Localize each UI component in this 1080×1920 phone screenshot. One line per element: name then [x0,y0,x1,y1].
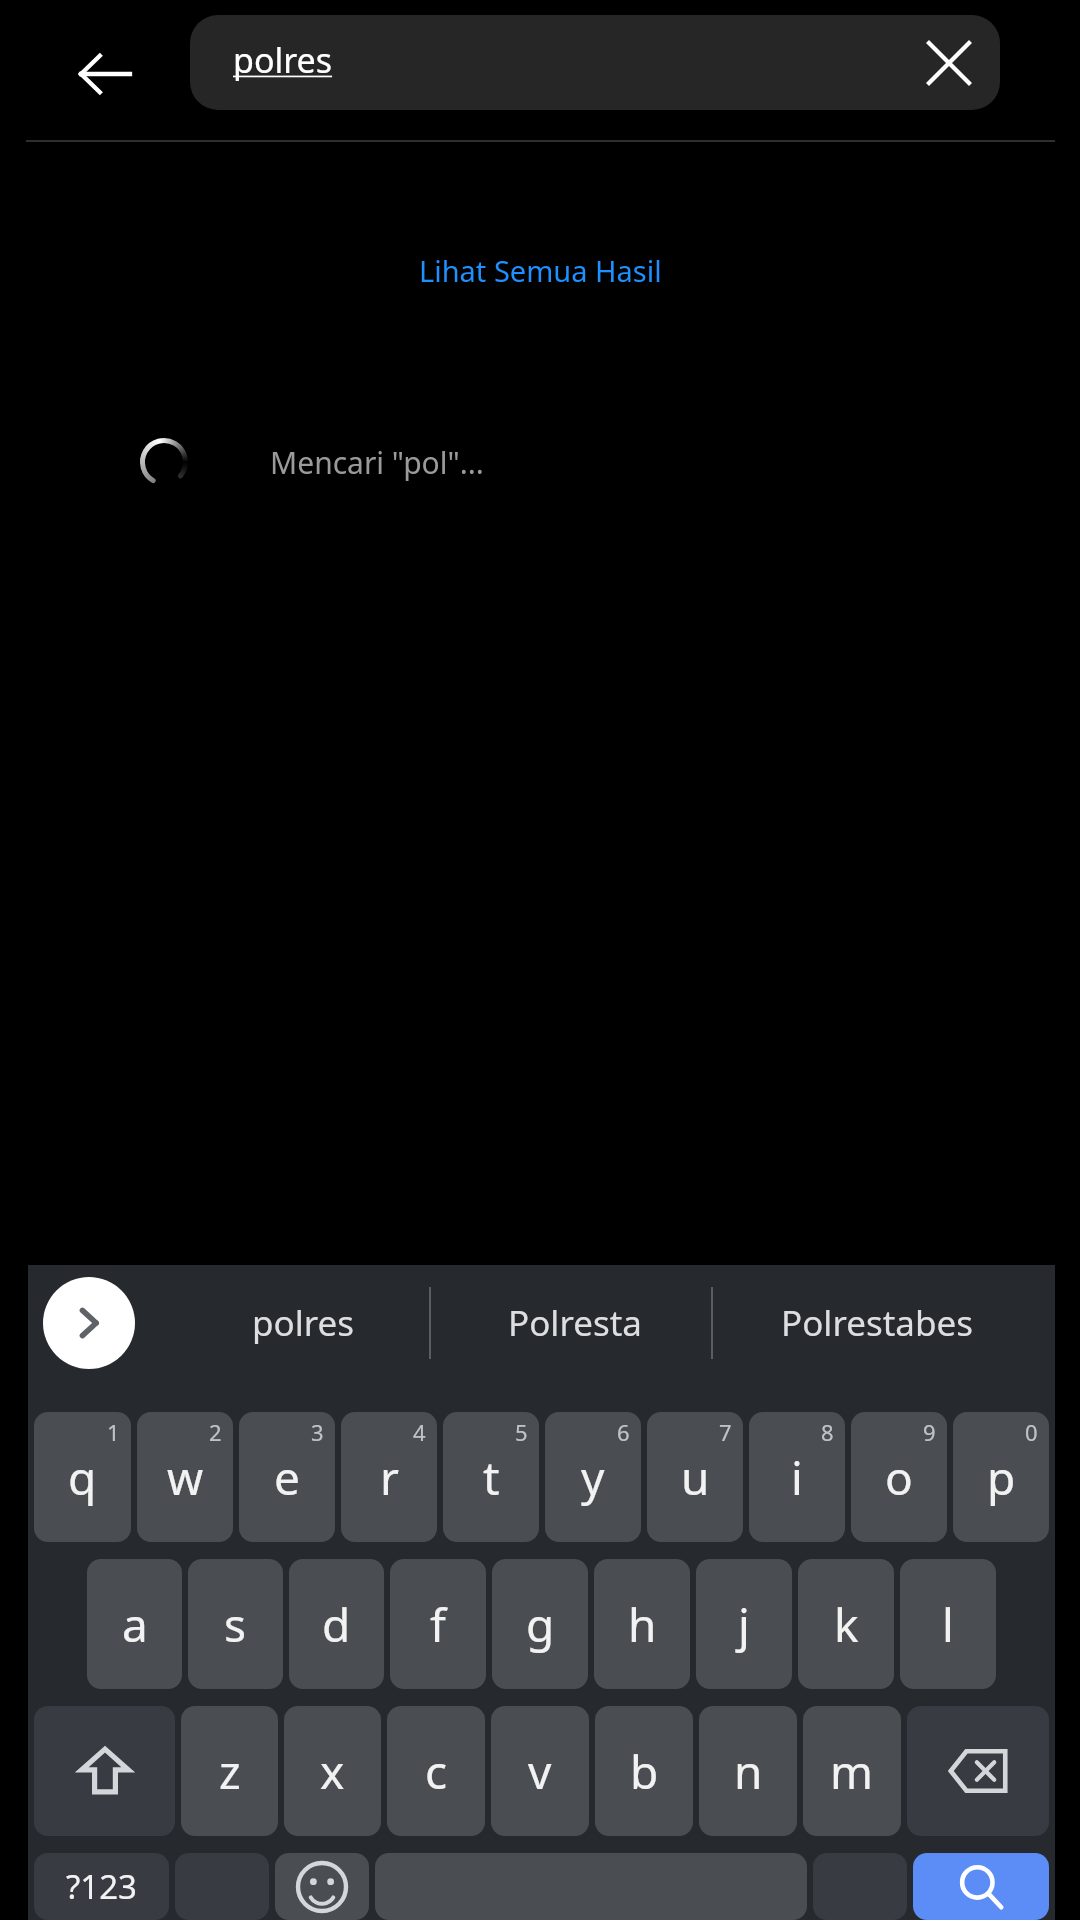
staticText: g [526,1593,555,1656]
button[interactable]: Search [913,1853,1049,1920]
button[interactable]: x [284,1706,381,1836]
button[interactable]: u [647,1412,743,1542]
button[interactable]: Lihat Semua Hasil [0,238,1080,302]
staticText: v [528,1740,552,1803]
staticText: f [430,1593,446,1656]
staticText: polres [252,1299,354,1347]
button[interactable]: z [181,1706,278,1836]
staticText: p [987,1446,1016,1509]
button[interactable]: Comma [175,1853,269,1920]
staticText: o [885,1446,913,1509]
button[interactable]: l [900,1559,996,1689]
button[interactable]: r [341,1412,437,1542]
button[interactable]: Polrestabes [722,1265,1032,1380]
button[interactable]: j [696,1559,792,1689]
button[interactable]: g [492,1559,588,1689]
button[interactable]: w [137,1412,233,1542]
button[interactable]: Emoji [275,1853,369,1920]
staticText: 8 [821,1417,834,1447]
staticText: Polrestabes [781,1299,973,1347]
staticText: Lihat Semua Hasil [419,251,662,290]
button[interactable]: polres [190,15,1000,110]
staticText: 9 [923,1417,936,1447]
button[interactable]: Shift [34,1706,175,1836]
button[interactable]: Polresta [440,1265,710,1380]
staticText: m [830,1740,874,1803]
button[interactable]: b [595,1706,693,1836]
staticText: 2 [209,1417,222,1447]
button[interactable]: Back [47,16,163,132]
button[interactable]: e [239,1412,335,1542]
button[interactable]: Backspace [907,1706,1049,1836]
staticText: w [167,1446,204,1509]
staticText: ?123 [66,1864,137,1909]
staticText: Polresta [508,1299,642,1347]
button[interactable]: y [545,1412,641,1542]
button[interactable]: c [387,1706,485,1836]
button[interactable]: i [749,1412,845,1542]
button[interactable]: Period [813,1853,907,1920]
staticText: k [834,1593,859,1656]
button[interactable]: polres [188,1265,418,1380]
button[interactable]: q [34,1412,131,1542]
button[interactable]: Clear search [906,20,992,106]
staticText: 4 [413,1417,426,1447]
staticText: d [322,1593,351,1656]
button[interactable]: a [87,1559,182,1689]
staticText: x [320,1740,345,1803]
staticText: q [68,1446,97,1509]
staticText: r [380,1446,399,1509]
staticText: b [630,1740,659,1803]
button[interactable]: p [953,1412,1049,1542]
button[interactable]: o [851,1412,947,1542]
button[interactable]: d [289,1559,384,1689]
button[interactable]: k [798,1559,894,1689]
button[interactable]: v [491,1706,589,1836]
staticText: polres [233,37,333,83]
staticText: e [274,1446,300,1509]
staticText: y [581,1446,605,1509]
staticText: z [219,1740,241,1803]
button[interactable]: s [188,1559,283,1689]
staticText: 3 [311,1417,324,1447]
staticText: i [791,1446,803,1509]
staticText: j [738,1593,750,1656]
button[interactable]: n [699,1706,797,1836]
staticText: 1 [107,1417,120,1447]
button[interactable]: t [443,1412,539,1542]
staticText: l [942,1593,954,1656]
button[interactable]: f [390,1559,486,1689]
staticText: 5 [515,1417,528,1447]
staticText: 7 [719,1417,732,1447]
button[interactable]: h [594,1559,690,1689]
staticText: u [681,1446,710,1509]
staticText: a [122,1593,148,1656]
button[interactable]: m [803,1706,901,1836]
staticText: 6 [617,1417,630,1447]
staticText: 0 [1025,1417,1038,1447]
staticText: t [483,1446,500,1509]
staticText: s [224,1593,247,1656]
button[interactable]: ?123 [34,1853,169,1920]
staticText: n [734,1740,763,1803]
staticText: Mencari "pol"... [270,442,484,483]
button[interactable]: More suggestions [43,1277,135,1369]
staticText: c [425,1740,448,1803]
staticText: h [628,1593,657,1656]
